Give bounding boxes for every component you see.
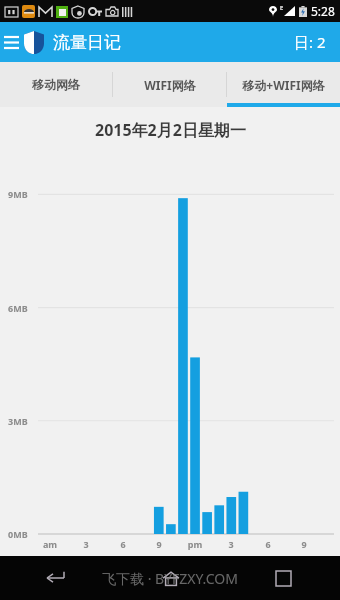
staticText: 3 <box>222 538 240 550</box>
staticText: 2015年2月2日星期一 <box>95 119 246 141</box>
button[interactable]: 日: 2 <box>290 26 330 58</box>
staticText: 0MB <box>8 528 28 540</box>
staticText: 飞下载 · BYFZXY.COM <box>102 569 238 588</box>
button[interactable]: Menu <box>0 22 22 62</box>
staticText: am <box>41 538 59 550</box>
staticText: 流量日记 <box>53 32 121 53</box>
button[interactable]: 移动+WIFI网络 <box>227 62 340 107</box>
staticText: 3MB <box>8 415 28 427</box>
button[interactable]: 移动网络 <box>0 62 112 107</box>
staticText: pm <box>186 538 204 550</box>
staticText: WIFI网络 <box>144 77 196 93</box>
button[interactable]: Home <box>114 556 227 600</box>
staticText: 6 <box>114 538 132 550</box>
staticText: 6MB <box>8 302 28 314</box>
button[interactable]: Recent apps <box>227 556 340 600</box>
staticText: 9 <box>295 538 313 550</box>
staticText: 6 <box>259 538 277 550</box>
staticText: 5:28 <box>311 3 335 19</box>
staticText: 9 <box>150 538 168 550</box>
staticText: 3 <box>77 538 95 550</box>
button[interactable]: WIFI网络 <box>113 62 226 107</box>
staticText: 9MB <box>8 188 28 200</box>
staticText: 移动网络 <box>32 77 80 92</box>
staticText: 移动+WIFI网络 <box>242 77 325 93</box>
button[interactable]: Back <box>0 556 114 600</box>
staticText: E <box>280 4 284 12</box>
staticText: 日: 2 <box>294 32 326 52</box>
